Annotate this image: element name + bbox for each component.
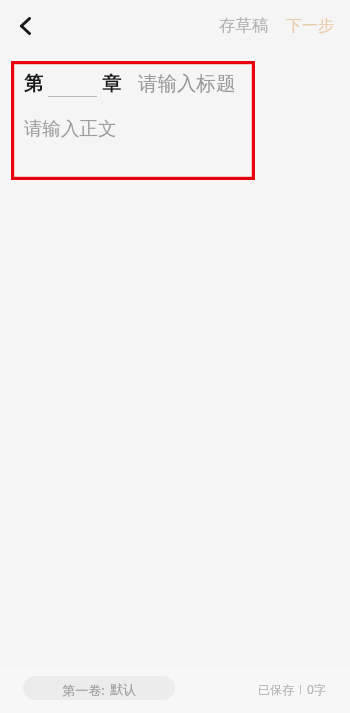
staticText: 第一卷: <box>62 681 105 699</box>
staticText: 0字 <box>307 681 326 697</box>
staticText: 第 <box>24 72 43 96</box>
staticText: 默认 <box>110 681 136 697</box>
button[interactable]: 第一卷: <box>23 676 175 700</box>
staticText: 章 <box>102 72 121 96</box>
button[interactable]: 存草稿 <box>212 6 276 45</box>
staticText: 存草稿 <box>219 15 269 36</box>
staticText: 下一步 <box>286 16 334 36</box>
button[interactable]: Back <box>3 4 47 48</box>
button[interactable]: 第 <box>24 71 236 96</box>
button[interactable]: 下一步 <box>279 7 341 45</box>
staticText: 请输入标题 <box>138 71 236 96</box>
button[interactable]: 请输入正文 <box>24 117 117 140</box>
staticText: 已保存 <box>258 682 294 697</box>
